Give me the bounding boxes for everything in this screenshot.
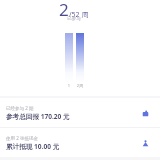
- staticText: 已参与: [0, 16, 148, 22]
- staticText: 参考总回报 170.20 元: [6, 112, 70, 121]
- other: Earnings: [141, 109, 149, 117]
- staticText: 累计抵现 10.00 元: [6, 142, 60, 151]
- staticText: 使用 2 张抵现金: [6, 135, 38, 141]
- button[interactable]: 已经参与 2 期: [0, 98, 160, 127]
- button[interactable]: 使用 2 张抵现金: [0, 128, 160, 157]
- other: Coupon: [141, 139, 149, 147]
- staticText: 1: [65, 83, 73, 88]
- staticText: 已经参与 2 期: [6, 105, 34, 111]
- staticText: /52 周: [69, 10, 89, 20]
- staticText: 2周: [76, 83, 84, 88]
- staticText: 2: [59, 0, 69, 21]
